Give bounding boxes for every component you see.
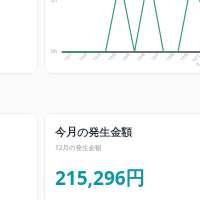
staticText: 12/8 <box>165 52 176 62</box>
staticText: 12/10 <box>191 52 200 68</box>
button[interactable]: Previous amount card <box>0 113 38 200</box>
staticText: 12/9 <box>179 52 190 62</box>
staticText: 12/2 <box>78 52 89 62</box>
button[interactable]: 今月の発生金額 <box>44 113 200 200</box>
staticText: 12/4 <box>107 52 118 62</box>
button[interactable]: Daily usage line chart <box>44 0 200 74</box>
staticText: 今月の発生金額 <box>55 125 133 139</box>
staticText: 12/6 <box>136 52 147 62</box>
staticText: 0h <box>51 48 57 55</box>
staticText: 12/1 <box>63 52 74 62</box>
staticText: 215,296円 <box>55 165 145 191</box>
staticText: 12/3 <box>92 52 103 62</box>
staticText: 12/5 <box>121 52 132 62</box>
staticText: 2h <box>51 0 57 4</box>
staticText: 12/7 <box>150 52 161 62</box>
button[interactable]: Previous chart card <box>0 0 38 74</box>
staticText: 12月の発生金額 <box>55 143 102 152</box>
